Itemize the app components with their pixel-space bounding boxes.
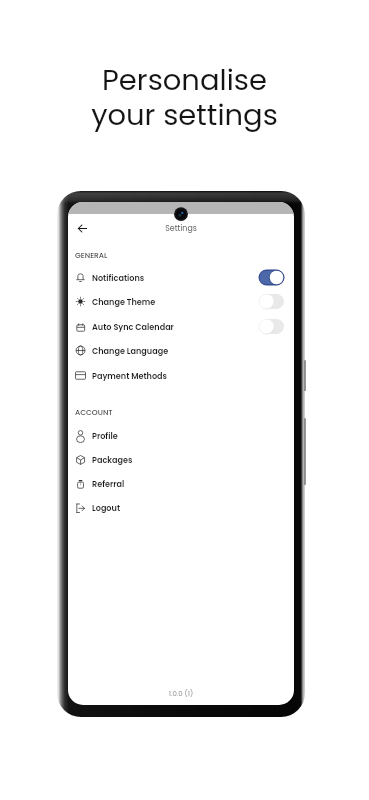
button[interactable]: Change Theme (68, 289, 294, 313)
staticText: Logout (92, 502, 121, 513)
staticText: Change Theme (92, 296, 156, 307)
staticText: Referral (92, 478, 125, 489)
button[interactable]: Logout (68, 495, 294, 519)
button[interactable]: Packages (68, 447, 294, 471)
staticText: Personalise your settings (0, 60, 369, 135)
staticText: Settings (68, 223, 294, 234)
staticText: 1.0.0 (1) (68, 689, 294, 699)
staticText: ACCOUNT (75, 407, 113, 417)
staticText: Notifications (92, 272, 145, 283)
staticText: Auto Sync Calendar (92, 321, 174, 332)
button[interactable]: Back (72, 218, 93, 239)
staticText: Profile (92, 430, 118, 441)
button[interactable]: Auto Sync Calendar (68, 314, 294, 338)
staticText: Change Language (92, 345, 169, 356)
button[interactable]: Profile (68, 423, 294, 447)
button[interactable]: Switch on (259, 270, 284, 285)
staticText: Packages (92, 454, 133, 465)
button[interactable]: Payment Methods (68, 363, 294, 387)
button[interactable]: Change Language (68, 338, 294, 362)
button[interactable]: Switch off (259, 294, 284, 309)
button[interactable]: Switch off (259, 319, 284, 334)
staticText: GENERAL (75, 250, 108, 260)
button[interactable]: Referral (68, 471, 294, 495)
button[interactable]: Notifications (68, 265, 294, 289)
staticText: Payment Methods (92, 370, 168, 381)
